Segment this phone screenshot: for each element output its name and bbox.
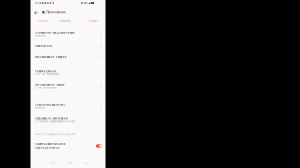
staticText: Управление уведомлениями [35, 31, 75, 34]
button[interactable]: Использование батареи [30, 53, 105, 61]
staticText: 14:58 [35, 2, 41, 4]
staticText: Открыть [38, 19, 48, 22]
button[interactable]: Back [82, 160, 88, 166]
staticText: Разрешено [35, 106, 45, 109]
staticText: Использование батареи [35, 55, 67, 58]
staticText: 37% [83, 2, 87, 4]
button[interactable]: Трафик данных [30, 68, 105, 78]
staticText: Использование памяти [35, 83, 65, 86]
staticText: Удалить разрешения и [35, 143, 66, 146]
button[interactable]: Использование памяти [30, 81, 105, 91]
button[interactable]: Остановить [57, 17, 72, 24]
staticText: НЕИСПОЛЬЗУЕМЫЕ ПРИЛОЖЕНИЯ [35, 133, 75, 136]
staticText: освободить место [35, 146, 60, 149]
button[interactable]: Открывать по умолчанию [30, 115, 105, 125]
button[interactable]: Управление уведомлениями [30, 29, 105, 39]
staticText: Удалить [88, 19, 97, 22]
button[interactable]: Разрешения [30, 42, 105, 50]
staticText: Открывать по умолчанию [35, 117, 68, 120]
button[interactable]: «Картинка в картинке» [30, 101, 105, 111]
staticText: 10,34 МБ использовано [35, 73, 59, 76]
button[interactable]: Открыть [37, 17, 48, 24]
staticText: Не открывать поддерживаемые ссылки [35, 120, 75, 123]
staticText: «Картинка в картинке» [35, 103, 66, 106]
button[interactable]: Удалить [86, 17, 99, 24]
staticText: Разрешены [35, 34, 46, 37]
staticText: Трафик данных [35, 70, 56, 73]
button[interactable]: Recent apps [66, 159, 74, 166]
button[interactable]: Удалить разрешения и [30, 141, 105, 151]
button[interactable]: Back [30, 0, 38, 8]
staticText: Приложение [46, 10, 66, 14]
staticText: 127 МБ использовано [35, 86, 56, 89]
staticText: Остановить [59, 19, 71, 22]
button[interactable]: Home [50, 159, 56, 166]
staticText: Разрешения [35, 44, 52, 47]
